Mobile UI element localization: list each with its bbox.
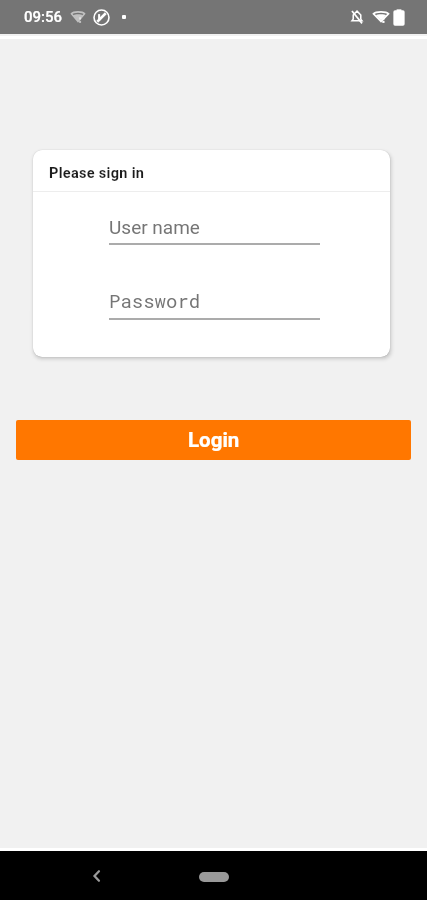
- button[interactable]: Home: [199, 872, 229, 882]
- staticText: User name: [109, 216, 200, 238]
- button[interactable]: Login: [16, 420, 411, 460]
- staticText: 09:56: [24, 8, 63, 26]
- button[interactable]: User name: [109, 216, 320, 245]
- staticText: Password: [109, 288, 201, 313]
- button[interactable]: Password: [109, 288, 320, 320]
- staticText: Please sign in: [49, 165, 145, 182]
- staticText: Login: [188, 428, 240, 452]
- button[interactable]: Back: [82, 861, 112, 891]
